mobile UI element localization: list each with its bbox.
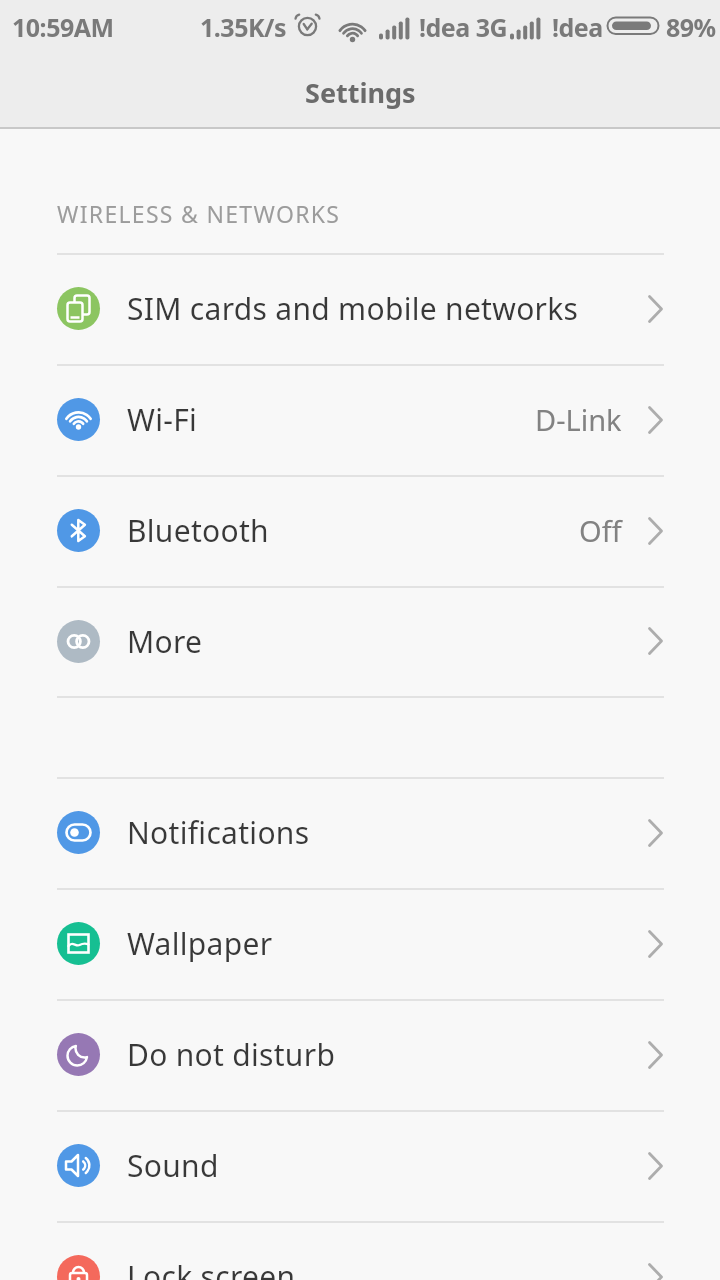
staticText: Wallpaper bbox=[127, 923, 273, 964]
button[interactable]: Bluetooth bbox=[0, 475, 720, 586]
button[interactable]: Lock screen bbox=[0, 1221, 720, 1280]
staticText: Notifications bbox=[127, 812, 310, 853]
staticText: Off bbox=[579, 511, 622, 550]
staticText: Settings bbox=[305, 74, 416, 111]
staticText: Do not disturb bbox=[127, 1034, 336, 1075]
staticText: Wi-Fi bbox=[127, 399, 198, 440]
staticText: 1.35K/s bbox=[200, 10, 286, 44]
staticText: !dea 3G bbox=[419, 10, 508, 44]
staticText: D-Link bbox=[535, 400, 622, 439]
button[interactable]: Notifications bbox=[0, 777, 720, 888]
staticText: Sound bbox=[127, 1145, 219, 1186]
staticText: !dea bbox=[552, 10, 603, 44]
button[interactable]: Do not disturb bbox=[0, 999, 720, 1110]
staticText: 89% bbox=[666, 10, 716, 44]
staticText: More bbox=[127, 621, 203, 662]
staticText: Bluetooth bbox=[127, 510, 269, 551]
staticText: 10:59AM bbox=[12, 10, 114, 44]
button[interactable]: SIM cards and mobile networks bbox=[0, 253, 720, 364]
staticText: WIRELESS & NETWORKS bbox=[57, 198, 341, 229]
button[interactable]: Wi-Fi bbox=[0, 364, 720, 475]
button[interactable]: Wallpaper bbox=[0, 888, 720, 999]
staticText: Lock screen bbox=[127, 1256, 296, 1280]
staticText: SIM cards and mobile networks bbox=[127, 288, 579, 329]
button[interactable]: More bbox=[0, 586, 720, 696]
button[interactable]: Sound bbox=[0, 1110, 720, 1221]
